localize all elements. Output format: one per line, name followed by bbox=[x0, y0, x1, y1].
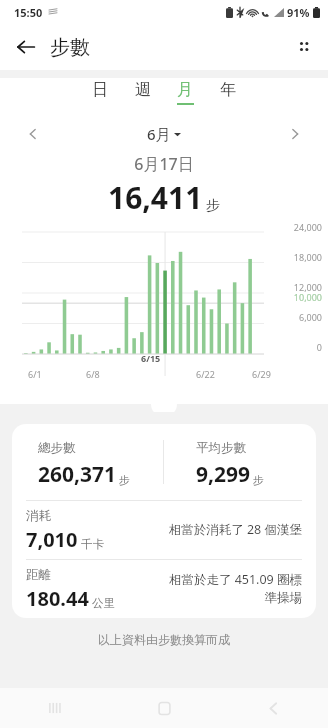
staticText: 準操場 bbox=[264, 590, 302, 606]
staticText: 6/15 bbox=[141, 352, 161, 364]
button[interactable]: 總步數 bbox=[12, 424, 163, 500]
staticText: 月 bbox=[177, 80, 193, 100]
staticText: 9,299 bbox=[196, 460, 251, 489]
button[interactable]: 上個月 bbox=[20, 121, 46, 147]
staticText: 步 bbox=[206, 197, 220, 215]
staticText: 18,000 bbox=[0, 251, 322, 263]
button[interactable]: 月 bbox=[171, 78, 199, 107]
staticText: 公里 bbox=[92, 596, 115, 610]
staticText: 24,000 bbox=[0, 221, 322, 233]
staticText: 日 bbox=[92, 80, 108, 100]
staticText: 步 bbox=[119, 473, 130, 487]
button[interactable]: 返回 bbox=[8, 29, 44, 65]
staticText: 0 bbox=[0, 341, 322, 353]
staticText: 步數 bbox=[50, 35, 90, 60]
button[interactable]: 年 bbox=[214, 78, 242, 107]
staticText: 千卡 bbox=[81, 537, 104, 551]
staticText: 步 bbox=[253, 473, 264, 487]
staticText: 6月 bbox=[147, 124, 171, 144]
staticText: 相當於走了 451.09 圈標 bbox=[168, 571, 302, 588]
staticText: 年 bbox=[220, 80, 236, 100]
staticText: 週 bbox=[135, 80, 151, 100]
staticText: 6/1 bbox=[28, 368, 42, 380]
staticText: 6,000 bbox=[0, 311, 322, 323]
staticText: 6/29 bbox=[252, 368, 271, 380]
staticText: 距離 bbox=[26, 567, 51, 583]
button[interactable]: 日 bbox=[86, 78, 114, 107]
staticText: 10,000 bbox=[0, 291, 322, 303]
staticText: 260,371 bbox=[38, 460, 117, 489]
staticText: 15:50 bbox=[14, 5, 43, 20]
staticText: 180.44 bbox=[26, 585, 89, 612]
staticText: 6/8 bbox=[86, 368, 100, 380]
button[interactable]: 6月 bbox=[147, 124, 181, 144]
button[interactable]: 週 bbox=[129, 78, 157, 107]
button[interactable]: 消耗 bbox=[12, 501, 316, 559]
button[interactable]: 展開 bbox=[151, 391, 177, 417]
staticText: 相當於消耗了 28 個漢堡 bbox=[168, 521, 302, 538]
button[interactable]: 下個月 bbox=[282, 121, 308, 147]
staticText: 6/22 bbox=[196, 368, 215, 380]
staticText: 總步數 bbox=[38, 440, 76, 456]
button[interactable]: 平均步數 bbox=[164, 424, 316, 500]
button[interactable]: 更多選項 bbox=[286, 29, 322, 65]
staticText: 91% bbox=[287, 5, 310, 20]
staticText: 消耗 bbox=[26, 508, 51, 524]
staticText: 12,000 bbox=[0, 281, 322, 293]
button[interactable]: 距離 bbox=[12, 560, 316, 618]
staticText: 6月17日 bbox=[0, 153, 328, 175]
staticText: 7,010 bbox=[26, 526, 78, 553]
staticText: 以上資料由步數換算而成 bbox=[0, 632, 328, 647]
staticText: 平均步數 bbox=[196, 440, 246, 456]
staticText: 16,411 bbox=[108, 177, 203, 218]
